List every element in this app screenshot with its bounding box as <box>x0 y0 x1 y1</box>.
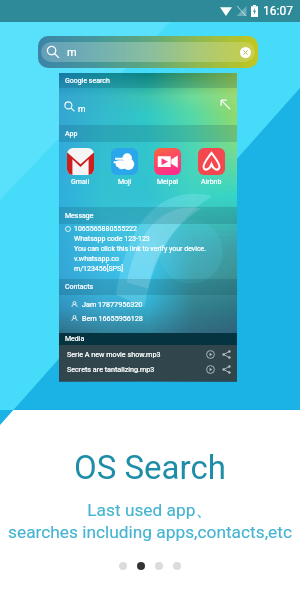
button[interactable]: Jam 17877956320 <box>71 297 237 311</box>
button[interactable]: Bern 16655956128 <box>71 311 237 325</box>
other: Share <box>222 350 231 359</box>
staticText: App <box>65 130 78 138</box>
staticText: Jam 17877956320 <box>82 300 143 308</box>
staticText: Meipai <box>157 178 178 186</box>
button[interactable]: Airbnb <box>198 148 225 186</box>
staticText: Gmail <box>71 178 90 186</box>
staticText: Contacts <box>65 283 94 291</box>
staticText: Media <box>65 335 85 343</box>
button[interactable]: Secrets are tantalizing.mp3 <box>67 362 231 376</box>
button[interactable] <box>119 562 127 570</box>
button[interactable]: Moji <box>111 148 138 186</box>
staticText: Whatsapp code 123-123 <box>74 235 150 243</box>
button[interactable] <box>137 562 145 570</box>
button[interactable]: 1065565880555222 <box>59 225 237 277</box>
staticText: Last used app、 searches including apps,c… <box>8 499 292 543</box>
staticText: m <box>78 104 86 114</box>
staticText: Airbnb <box>201 178 222 186</box>
other: Share <box>222 365 231 374</box>
staticText: m <box>67 46 77 59</box>
button[interactable]: m <box>59 88 237 125</box>
staticText: You can click this link to verify your d… <box>74 245 252 272</box>
staticText: Secrets are tantalizing.mp3 <box>67 365 155 373</box>
button[interactable]: Gmail <box>67 148 94 186</box>
other: Play <box>206 365 215 374</box>
staticText: Message <box>65 212 94 220</box>
staticText: OS Search <box>74 448 226 487</box>
button[interactable] <box>155 562 163 570</box>
staticText: Google search <box>65 77 110 85</box>
staticText: Moji <box>118 178 132 186</box>
staticText: 1065565880555222 <box>74 225 137 233</box>
staticText: 16:07 <box>263 4 293 18</box>
staticText: Bern 16655956128 <box>82 314 143 322</box>
button[interactable] <box>173 562 181 570</box>
button[interactable]: m <box>38 36 258 68</box>
staticText: Serie A new movie show.mp3 <box>67 350 161 358</box>
button[interactable]: Clear search <box>240 47 251 58</box>
button[interactable]: Meipai <box>154 148 181 186</box>
other: Play <box>206 350 215 359</box>
button[interactable]: Serie A new movie show.mp3 <box>67 347 231 361</box>
